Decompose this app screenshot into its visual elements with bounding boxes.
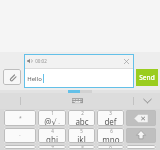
staticText: jkl [77,134,86,143]
button[interactable]: Switch keyboard [67,94,87,108]
button[interactable]: Send [136,69,158,86]
staticText: 7 [51,145,54,149]
staticText: . [58,118,60,126]
staticText: mno [102,134,120,143]
button[interactable]: 9 [97,145,124,149]
button[interactable]: · [4,128,36,143]
button[interactable]: 8 [68,145,95,149]
staticText: 8 [81,145,84,149]
staticText: Hello [27,75,42,83]
button[interactable]: * [4,110,36,126]
staticText: ghi [46,134,58,143]
staticText: 5 [80,128,83,134]
button[interactable]: 2 [68,110,95,126]
button[interactable] [126,145,156,149]
staticText: 9 [109,145,112,149]
button[interactable]: 1 [38,110,66,126]
button[interactable]: Backspace [126,110,156,126]
button[interactable]: Attach file [3,69,21,85]
staticText: Send [139,73,155,82]
staticText: @√ [44,116,57,126]
button[interactable]: 00:02 [24,54,134,88]
staticText: 2 [81,110,84,116]
staticText: abc [75,116,89,126]
staticText: 00:02 [35,58,47,64]
staticText: 1 [51,110,54,116]
staticText: def [104,116,117,126]
button[interactable]: · [4,145,36,149]
button[interactable]: Shift [126,128,156,143]
button[interactable]: 5 [68,128,95,143]
button[interactable]: 3 [97,110,124,126]
staticText: · [19,132,21,139]
button[interactable]: Hide keyboard [140,94,154,108]
staticText: 6 [110,128,113,134]
staticText: · [19,145,21,149]
button[interactable]: 6 [97,128,124,143]
staticText: 3 [109,110,112,116]
button[interactable]: 7 [38,145,66,149]
staticText: 4 [51,128,54,134]
button[interactable]: Remove voice clip [122,57,131,66]
button[interactable]: 4 [38,128,66,143]
staticText: * [19,115,22,122]
